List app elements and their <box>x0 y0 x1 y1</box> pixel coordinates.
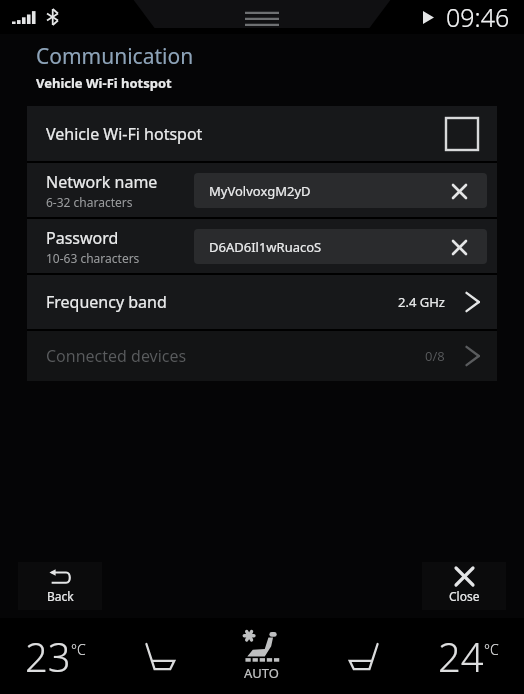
button[interactable]: 23 <box>0 618 111 694</box>
staticText: 2.4 GHz <box>398 293 445 311</box>
staticText: Connected devices <box>46 345 425 367</box>
button[interactable]: Frequency band <box>27 275 497 329</box>
staticText: 24 <box>438 629 484 683</box>
staticText: MyVolvoxgM2yD <box>209 182 311 200</box>
button[interactable]: Network name <box>27 163 497 217</box>
button[interactable]: Connected devices <box>27 331 497 381</box>
button[interactable]: D6AD6Il1wRuacoS <box>194 229 487 264</box>
staticText: Password <box>46 227 119 249</box>
staticText: 10-63 characters <box>46 250 140 266</box>
staticText: Vehicle Wi-Fi hotspot <box>46 123 446 145</box>
staticText: Vehicle Wi-Fi hotspot <box>36 74 172 92</box>
button[interactable]: Password <box>27 219 497 273</box>
staticText: 0/8 <box>425 347 445 365</box>
button[interactable]: Clear Network name <box>446 178 472 204</box>
staticText: °C <box>71 640 86 659</box>
button[interactable]: 24 <box>412 618 524 694</box>
button[interactable]: Left seat heating <box>111 618 208 694</box>
button[interactable]: Back <box>18 562 102 610</box>
staticText: °C <box>484 640 499 659</box>
button[interactable]: Vehicle Wi-Fi hotspot <box>27 106 497 161</box>
button[interactable]: Clear Password <box>446 234 472 260</box>
button[interactable]: MyVolvoxgM2yD <box>194 173 487 208</box>
staticText: 09:46 <box>446 0 510 34</box>
staticText: Communication <box>36 42 194 71</box>
staticText: Back <box>47 588 74 604</box>
staticText: Frequency band <box>46 291 398 313</box>
staticText: 23 <box>25 629 71 683</box>
staticText: AUTO <box>244 664 279 682</box>
button[interactable]: Right seat heating <box>315 618 412 694</box>
staticText: Close <box>449 588 480 604</box>
button[interactable]: Close <box>422 562 506 610</box>
staticText: Network name <box>46 171 158 193</box>
staticText: 6-32 characters <box>46 194 133 210</box>
button[interactable]: Climate auto <box>208 618 315 694</box>
staticText: D6AD6Il1wRuacoS <box>209 238 322 256</box>
